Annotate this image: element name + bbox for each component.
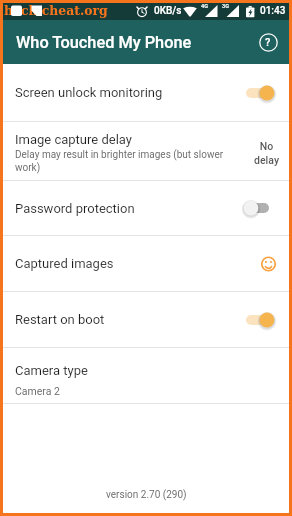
button[interactable]: Restart on boot <box>0 292 292 348</box>
staticText: Captured images <box>15 256 114 271</box>
staticText: hack-cheat.org <box>4 3 108 18</box>
staticText: Delay may result in brighter images (but… <box>15 149 231 174</box>
staticText: ? <box>265 36 271 49</box>
staticText: Restart on boot <box>15 312 105 327</box>
button[interactable]: Help <box>254 28 282 56</box>
staticText: Image capture delay <box>15 132 132 147</box>
button[interactable]: Password protection <box>0 181 292 236</box>
staticText: Camera type <box>15 363 88 378</box>
staticText: 3G <box>222 3 229 10</box>
staticText: Screen unlock monitoring <box>15 85 163 100</box>
staticText: Password protection <box>15 201 135 216</box>
staticText: Who Touched My Phone <box>16 33 192 52</box>
button[interactable]: Image capture delay <box>0 122 292 181</box>
button[interactable]: Captured images <box>0 236 292 292</box>
staticText: Camera 2 <box>15 385 60 397</box>
staticText: 4G <box>201 3 208 10</box>
staticText: No delay <box>254 140 279 166</box>
button[interactable]: Camera type <box>0 348 292 404</box>
staticText: 01:43 <box>260 5 286 17</box>
staticText: 0KB/s <box>154 5 182 17</box>
staticText: version 2.70 (290) <box>106 489 187 501</box>
button[interactable]: Screen unlock monitoring <box>0 64 292 122</box>
